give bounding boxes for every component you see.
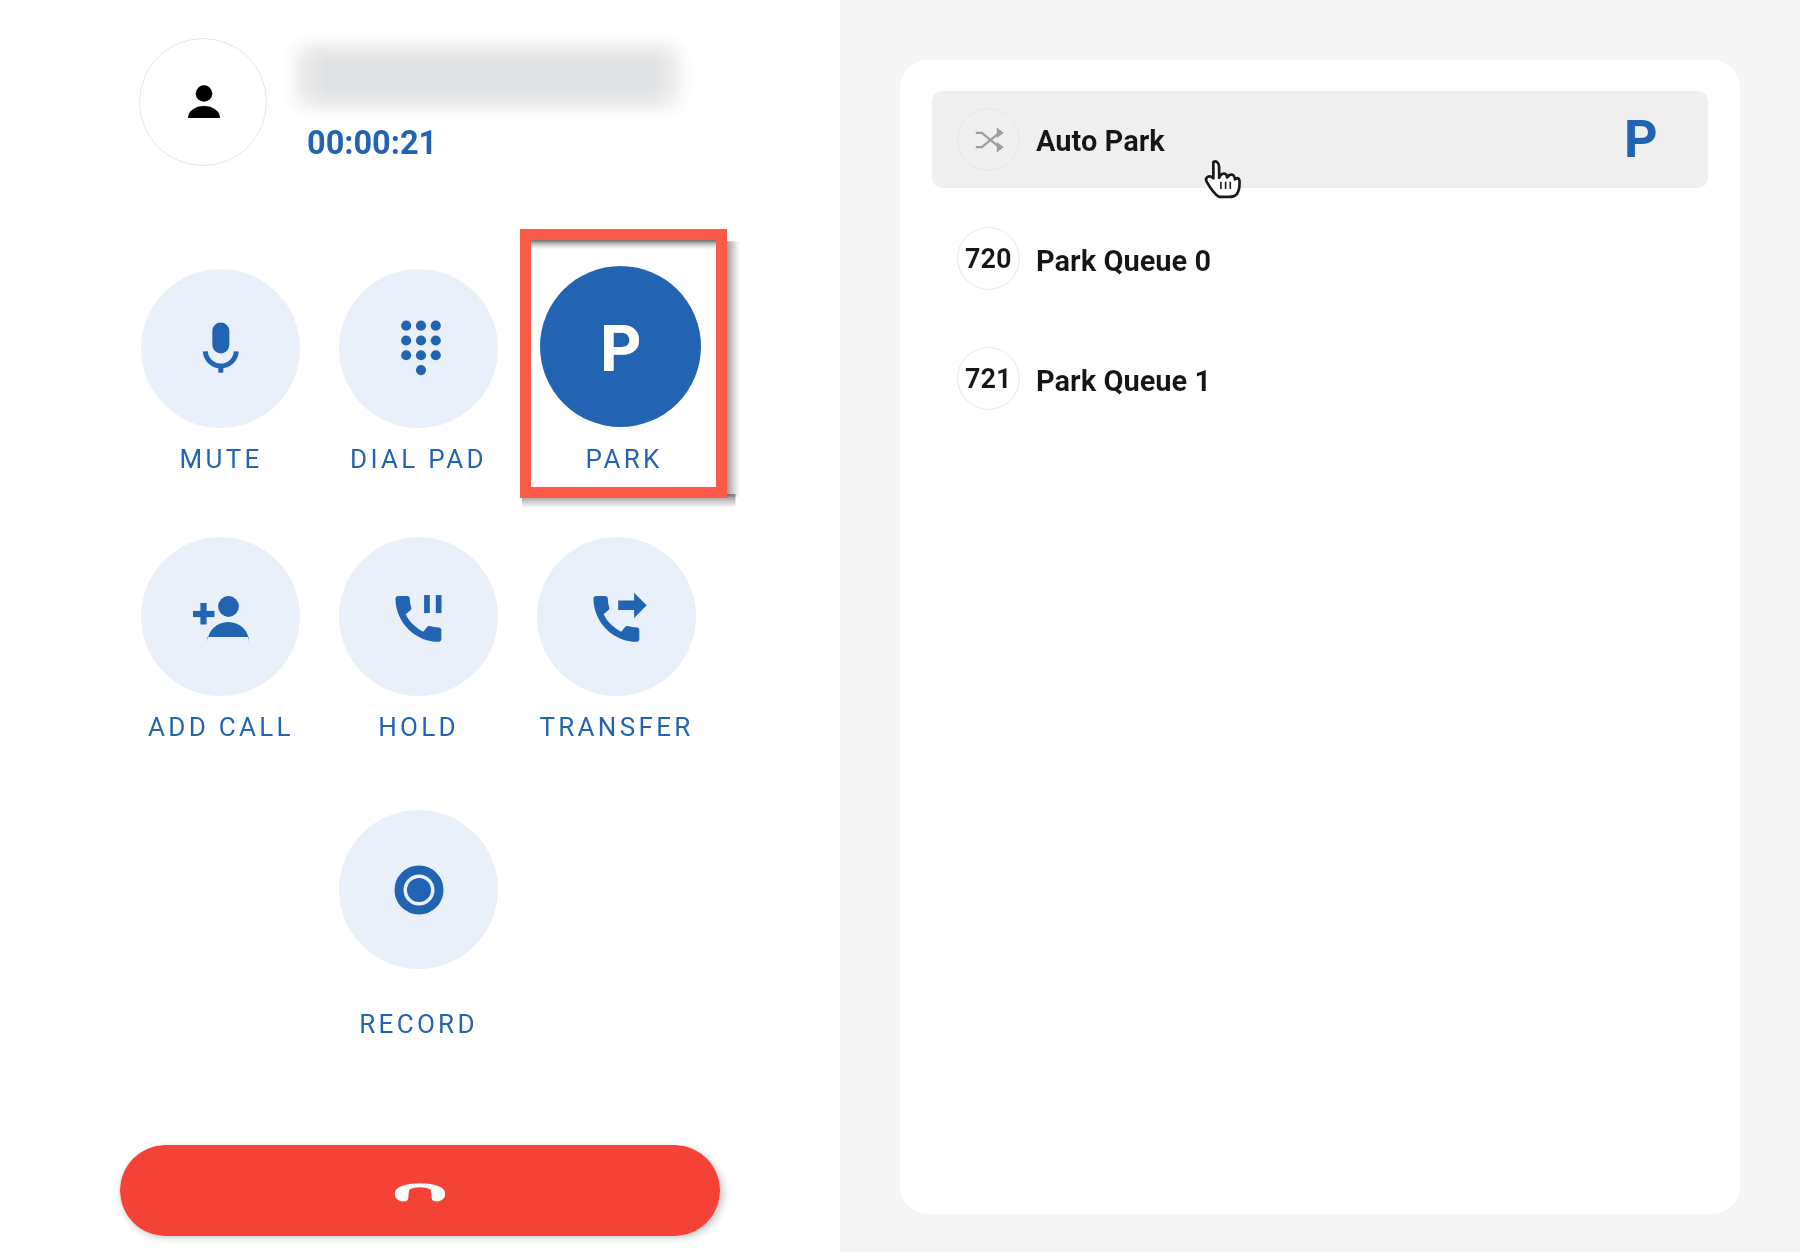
staticText: Park Queue 1 <box>1036 364 1212 398</box>
staticText: 720 <box>965 243 1012 275</box>
staticText: DIAL PAD <box>350 444 487 474</box>
button[interactable]: Auto Park <box>932 91 1708 188</box>
button[interactable]: ADD CALL <box>120 537 321 742</box>
staticText: P <box>600 312 642 387</box>
button[interactable]: Contact avatar <box>139 38 267 166</box>
staticText: HOLD <box>378 712 459 742</box>
staticText: PARK <box>585 444 663 474</box>
staticText: MUTE <box>179 444 263 474</box>
staticText: RECORD <box>359 1009 478 1039</box>
button[interactable]: 721 <box>932 330 1708 427</box>
staticText: Park Queue 0 <box>1036 244 1212 278</box>
staticText: P <box>1624 109 1658 170</box>
button[interactable]: HOLD <box>318 537 519 742</box>
staticText: Auto Park <box>1036 124 1165 158</box>
button[interactable]: MUTE <box>120 269 321 474</box>
staticText: ADD CALL <box>148 712 294 742</box>
button[interactable]: 720 <box>932 210 1708 307</box>
staticText: TRANSFER <box>539 712 694 742</box>
button[interactable]: P <box>520 229 727 498</box>
staticText: 721 <box>965 363 1012 395</box>
button[interactable]: TRANSFER <box>516 537 717 742</box>
button[interactable]: End call <box>120 1145 720 1236</box>
button[interactable]: DIAL PAD <box>318 269 519 474</box>
button[interactable]: RECORD <box>318 810 519 1039</box>
staticText: 00:00:21 <box>307 124 438 162</box>
